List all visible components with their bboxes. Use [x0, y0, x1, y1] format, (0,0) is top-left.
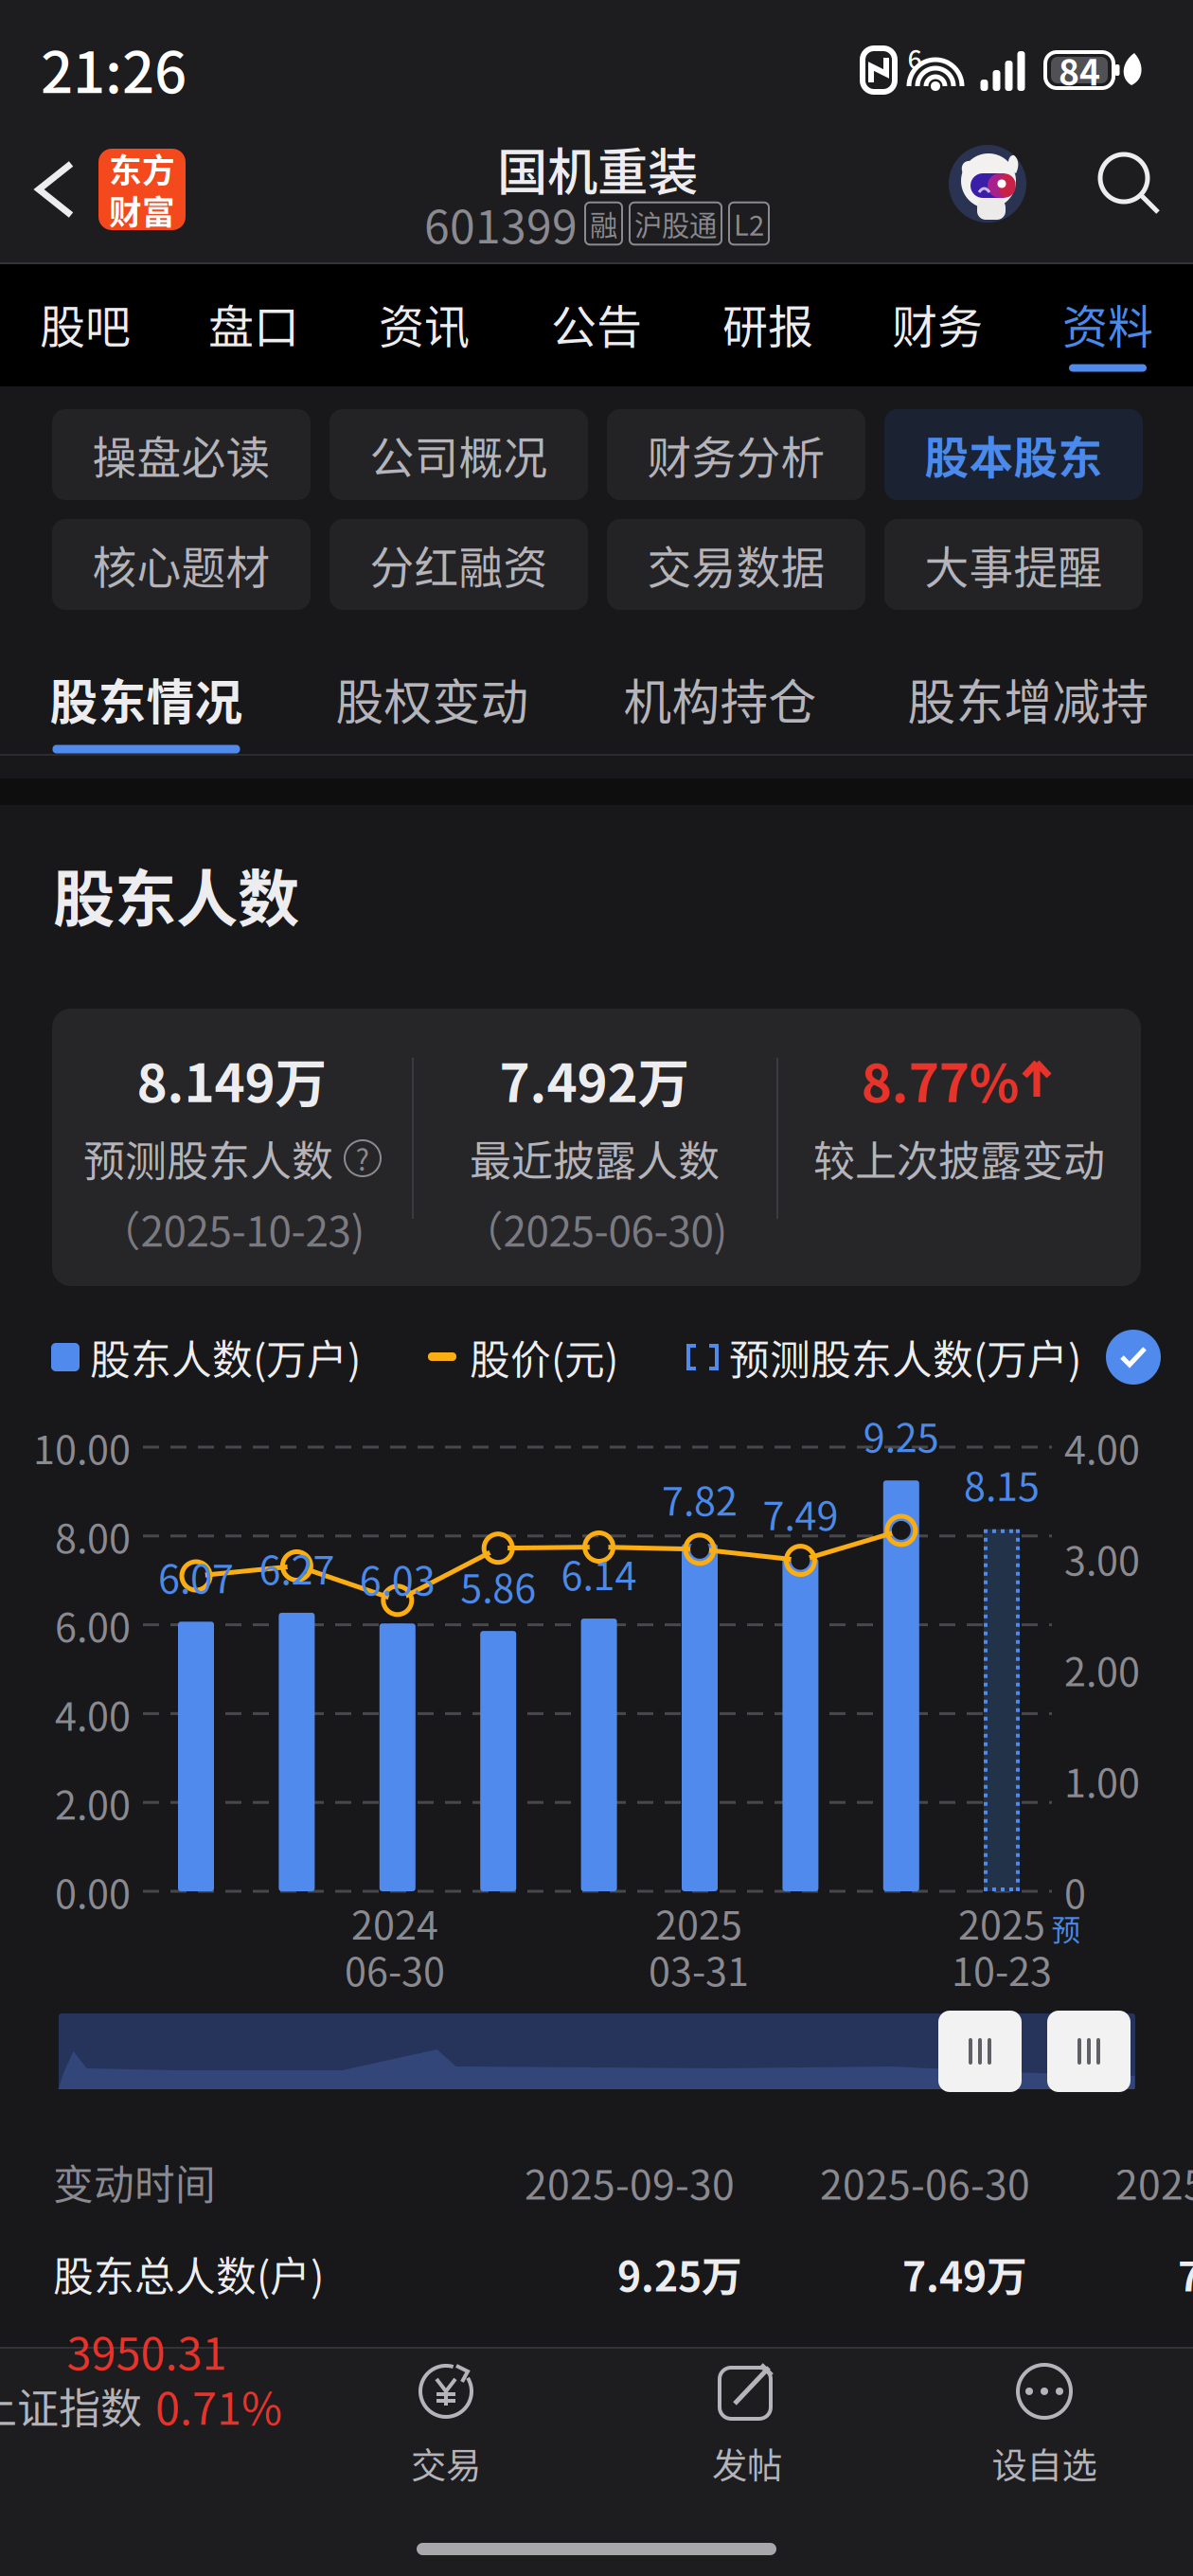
staticText: 东方: [109, 145, 175, 192]
staticText: 9.25: [863, 1407, 939, 1463]
staticText: 7.82: [662, 1470, 738, 1527]
staticText: 资讯: [379, 290, 470, 356]
staticText: 7.492万: [499, 1042, 690, 1117]
staticText: 交易: [411, 2438, 481, 2489]
button[interactable]: East Money: [98, 149, 186, 230]
staticText: 研报: [722, 290, 813, 356]
staticText: 分红融资: [370, 532, 548, 596]
staticText: 财务: [892, 290, 983, 356]
staticText: 21:26: [41, 27, 187, 109]
staticText: 10-23: [952, 1941, 1052, 1997]
staticText: 2025: [1115, 2153, 1193, 2211]
staticText: 股东增减持: [908, 664, 1149, 734]
button[interactable]: 设自选: [940, 2353, 1148, 2495]
staticText: 7.49万: [902, 2245, 1027, 2303]
staticText: 7: [1178, 2245, 1193, 2303]
staticText: 7.49: [763, 1485, 838, 1542]
staticText: 股权变动: [336, 664, 529, 734]
button[interactable]: Back: [7, 137, 111, 241]
staticText: 股价(元): [470, 1328, 618, 1386]
staticText: 融: [590, 203, 617, 244]
staticText: 机构持仓: [623, 664, 817, 734]
staticText: 2.00: [1064, 1641, 1140, 1698]
staticText: 变动时间: [53, 2153, 216, 2211]
staticText: 股东人数(万户): [90, 1328, 361, 1386]
staticText: 0.00: [55, 1863, 131, 1920]
staticText: 最近披露人数: [470, 1128, 720, 1188]
staticText: 股本股东: [925, 423, 1103, 487]
staticText: （2025-10-23): [99, 1198, 365, 1258]
staticText: 5.86: [460, 1557, 536, 1614]
staticText: 盘口: [208, 290, 299, 356]
staticText: （2025-06-30): [462, 1198, 728, 1258]
staticText: 0.71%: [155, 2374, 282, 2438]
staticText: 股东总人数(户): [53, 2245, 324, 2303]
button[interactable]: 操盘必读: [52, 409, 311, 500]
staticText: 预测股东人数: [83, 1128, 333, 1188]
button[interactable]: Assistant: [947, 143, 1028, 224]
staticText: 84: [1059, 45, 1100, 96]
button[interactable]: 股本股东: [884, 409, 1143, 500]
staticText: 沪股通: [634, 203, 717, 244]
button[interactable]: Toggle forecast: [1099, 1323, 1167, 1391]
button[interactable]: Search: [1080, 134, 1179, 233]
staticText: 设自选: [992, 2438, 1097, 2489]
staticText: 3950.31: [67, 2319, 227, 2383]
button[interactable]: 研报: [683, 264, 853, 386]
button[interactable]: 交易数据: [607, 519, 865, 610]
staticText: 1.00: [1064, 1752, 1140, 1809]
button[interactable]: Range handle: [1047, 2011, 1131, 2092]
staticText: 8.15: [964, 1455, 1040, 1512]
button[interactable]: 核心题材: [52, 519, 311, 610]
staticText: ?: [356, 1137, 370, 1179]
staticText: 较上次披露变动: [813, 1128, 1105, 1188]
staticText: 0: [1064, 1863, 1086, 1920]
staticText: 大事提醒: [925, 532, 1103, 596]
staticText: 公司概况: [370, 423, 548, 487]
staticText: 8.77%: [861, 1042, 1019, 1117]
staticText: 3.00: [1064, 1530, 1140, 1587]
button[interactable]: 机构持仓: [606, 636, 834, 761]
staticText: 操盘必读: [92, 423, 270, 487]
button[interactable]: 交易: [342, 2353, 550, 2495]
button[interactable]: 公司概况: [329, 409, 588, 500]
button[interactable]: 财务: [852, 264, 1023, 386]
button[interactable]: Range handle: [938, 2011, 1022, 2092]
staticText: 2025-06-30: [820, 2153, 1030, 2211]
staticText: 国机重装: [497, 132, 698, 205]
staticText: 03-31: [649, 1941, 749, 1997]
button[interactable]: 盘口: [169, 264, 339, 386]
staticText: 601399: [424, 191, 578, 256]
staticText: 4.00: [55, 1685, 131, 1742]
button[interactable]: 大事提醒: [884, 519, 1143, 610]
button[interactable]: 财务分析: [607, 409, 865, 500]
staticText: 2.00: [55, 1774, 131, 1831]
staticText: 6.27: [259, 1539, 335, 1596]
button[interactable]: 股东增减持: [891, 636, 1166, 761]
staticText: 4.00: [1064, 1419, 1140, 1476]
staticText: 9.25万: [617, 2245, 742, 2303]
staticText: 股吧: [40, 290, 131, 356]
button[interactable]: 股东情况: [32, 636, 260, 761]
button[interactable]: 资讯: [339, 264, 509, 386]
staticText: 10.00: [33, 1419, 131, 1476]
staticText: 股东人数: [53, 849, 299, 939]
staticText: 公告: [551, 290, 642, 356]
staticText: 8.00: [55, 1508, 131, 1564]
staticText: 6.14: [561, 1545, 637, 1601]
button[interactable]: 股权变动: [318, 636, 546, 761]
button[interactable]: 发帖: [643, 2353, 851, 2495]
staticText: 预测股东人数(万户): [729, 1328, 1081, 1386]
button[interactable]: 股吧: [0, 264, 170, 386]
staticText: L2: [734, 203, 764, 244]
staticText: 8.149万: [137, 1042, 327, 1117]
staticText: 2025: [655, 1894, 742, 1951]
staticText: 发帖: [712, 2438, 782, 2489]
button[interactable]: 分红融资: [329, 519, 588, 610]
button[interactable]: 资料: [1023, 264, 1193, 386]
button[interactable]: 公告: [511, 264, 682, 386]
staticText: 预: [1051, 1907, 1081, 1949]
staticText: 6: [908, 39, 922, 76]
button[interactable]: 上证指数 3950.31 0.71%: [0, 2311, 284, 2462]
staticText: 资料: [1062, 290, 1153, 356]
